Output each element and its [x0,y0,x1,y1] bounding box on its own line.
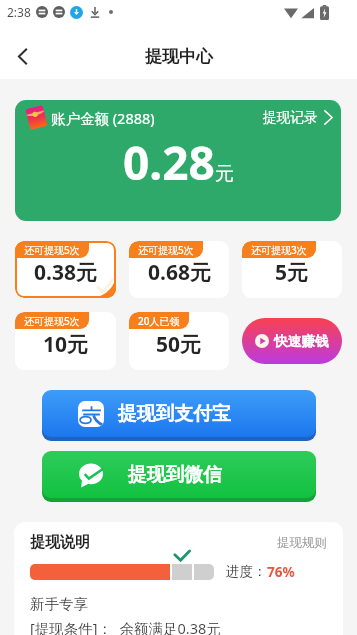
staticText: 还可提现3次 [251,243,307,257]
button[interactable]: 快速赚钱 [242,318,342,364]
button[interactable]: 还可提现5次 [15,312,116,370]
staticText: 0.28 [123,131,215,194]
button[interactable]: 提现到支付宝 [42,390,316,437]
staticText: 76% [267,563,295,581]
staticText: 提现说明 [30,533,90,552]
button[interactable]: 还可提现5次 [15,241,116,298]
staticText: 0.68元 [148,258,211,287]
staticText: 50元 [156,330,202,359]
staticText: 5元 [275,258,309,287]
staticText: 还可提现5次 [138,243,194,257]
staticText: 提现记录 [263,109,318,126]
staticText: 10元 [43,330,89,359]
staticText: [提现条件]： 余额满足0.38元 [30,618,221,635]
staticText: 提现中心 [145,46,213,67]
button[interactable]: 20人已领 [129,312,229,370]
staticText: 提现到微信 [128,463,222,487]
staticText: 还可提现5次 [24,243,80,257]
button[interactable]: 还可提现3次 [242,241,342,298]
staticText: 0.38元 [34,258,97,287]
staticText: 新手专享 [30,595,88,613]
staticText: 账户金额 (2888) [51,108,155,128]
staticText: 提现到支付宝 [118,402,231,426]
button[interactable]: 提现规则 [277,535,327,551]
staticText: 2:38 [7,4,31,20]
button[interactable]: 提现到微信 [42,451,316,498]
button[interactable]: 还可提现5次 [129,241,229,298]
staticText: 20人已领 [138,314,180,328]
staticText: 进度： [226,563,267,580]
staticText: 还可提现5次 [24,314,80,328]
staticText: 快速赚钱 [274,333,329,350]
staticText: 元 [215,162,234,186]
button[interactable]: 提现记录 [263,105,333,130]
button[interactable]: Back [0,34,44,78]
